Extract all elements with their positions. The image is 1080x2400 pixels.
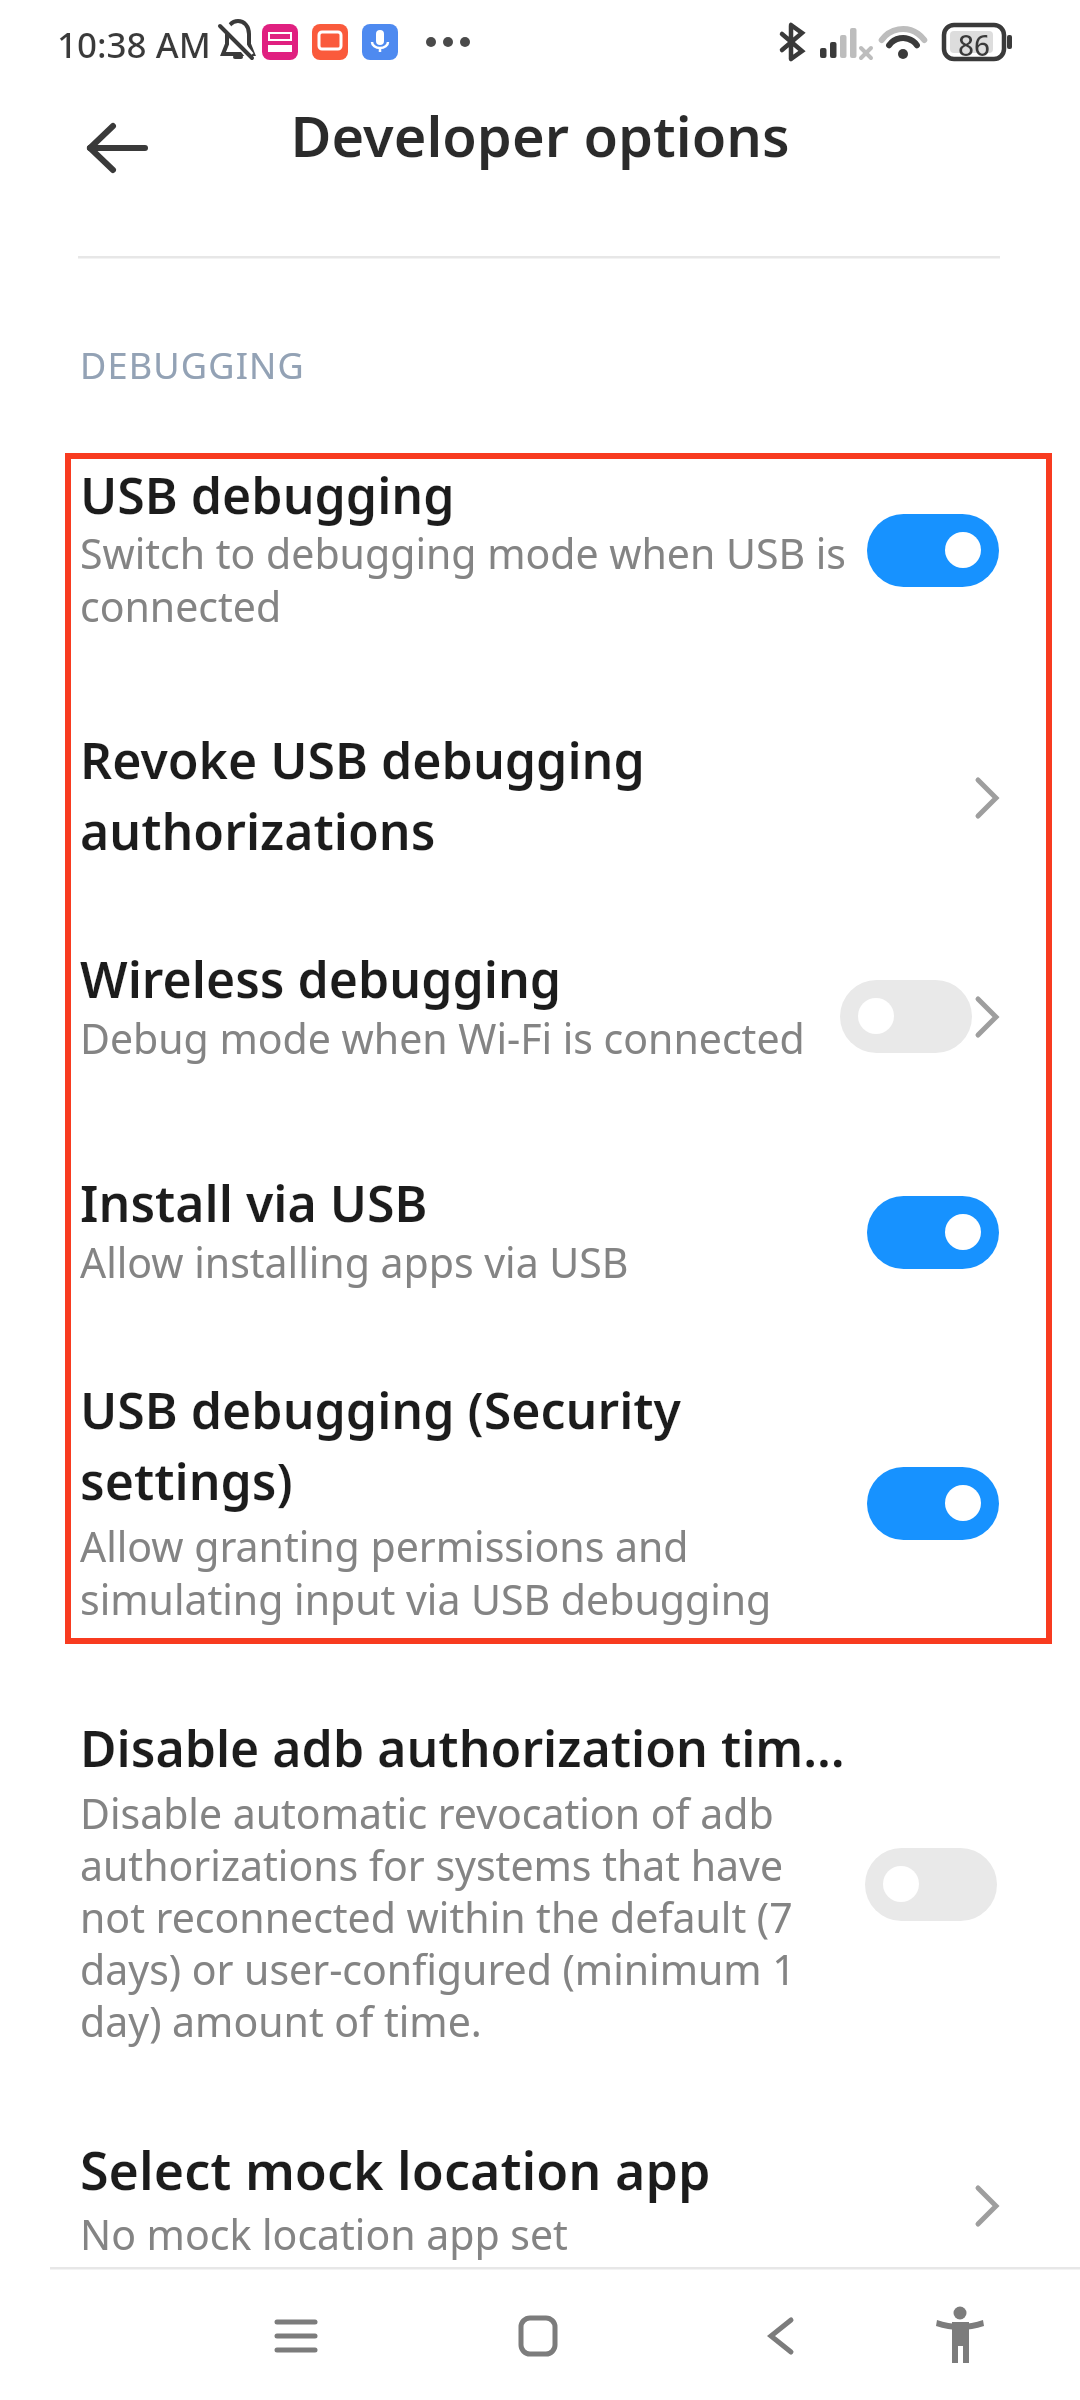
button[interactable]: USB debugging <box>0 455 1080 705</box>
staticText: DEBUGGING <box>80 341 306 390</box>
staticText: 86 <box>958 26 991 64</box>
button[interactable]: Revoke USB debugging authorizations <box>0 705 1080 935</box>
button[interactable] <box>867 1467 999 1540</box>
button[interactable]: Select mock location app <box>0 2090 1080 2268</box>
button[interactable] <box>865 1848 997 1921</box>
staticText: Install via USB <box>80 1169 428 1237</box>
button[interactable]: Install via USB <box>0 1150 1080 1350</box>
staticText: Disable automatic revocation of adb auth… <box>80 1785 796 2049</box>
staticText: Debug mode when Wi-Fi is connected <box>80 1010 805 1066</box>
staticText: 10:38 AM <box>57 21 211 69</box>
button[interactable] <box>840 980 972 1053</box>
button[interactable] <box>867 1196 999 1269</box>
staticText: Select mock location app <box>80 2134 711 2205</box>
button[interactable] <box>488 2286 588 2386</box>
button[interactable] <box>867 514 999 587</box>
button[interactable]: Disable adb authorization tim… <box>0 1660 1080 2090</box>
staticText: USB debugging (Security settings) <box>80 1376 681 1515</box>
button[interactable]: Wireless debugging <box>0 935 1080 1150</box>
staticText: USB debugging <box>80 461 455 529</box>
button[interactable]: USB debugging (Security settings) <box>0 1350 1080 1640</box>
staticText: Allow installing apps via USB <box>80 1234 629 1290</box>
staticText: Allow granting permissions and simulatin… <box>80 1518 772 1627</box>
button[interactable] <box>910 2286 1010 2386</box>
button[interactable] <box>246 2286 346 2386</box>
button[interactable] <box>70 112 160 182</box>
staticText: No mock location app set <box>80 2206 568 2262</box>
button[interactable] <box>731 2286 831 2386</box>
staticText: Developer options <box>0 97 1080 2400</box>
staticText: Switch to debugging mode when USB is con… <box>80 525 847 634</box>
staticText: Revoke USB debugging authorizations <box>80 726 645 865</box>
staticText: Wireless debugging <box>80 945 562 1013</box>
staticText: Disable adb authorization tim… <box>80 1714 845 1782</box>
